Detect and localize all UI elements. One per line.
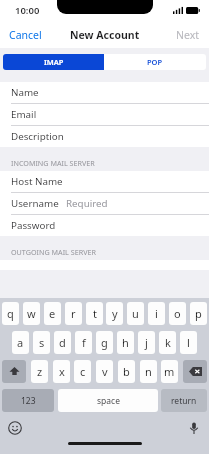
button[interactable]: n bbox=[140, 360, 157, 383]
staticText: INCOMING MAIL SERVER bbox=[11, 158, 95, 168]
staticText: k bbox=[165, 335, 171, 350]
staticText: h bbox=[122, 335, 129, 350]
staticText: x bbox=[59, 364, 65, 379]
staticText: m bbox=[164, 364, 175, 379]
button[interactable]: POP bbox=[104, 54, 206, 70]
button[interactable]: c bbox=[74, 360, 91, 383]
staticText: j bbox=[145, 335, 148, 350]
staticText: i bbox=[155, 306, 158, 321]
staticText: b bbox=[123, 364, 130, 379]
staticText: c bbox=[80, 364, 86, 379]
staticText: n bbox=[145, 364, 152, 379]
staticText: Next bbox=[176, 28, 200, 42]
button[interactable]: Username bbox=[0, 193, 209, 215]
staticText: p bbox=[195, 306, 202, 321]
button[interactable]: Name bbox=[0, 82, 209, 104]
staticText: r bbox=[71, 306, 76, 321]
staticText: Cancel bbox=[9, 28, 42, 42]
button[interactable]: IMAP bbox=[3, 54, 104, 70]
staticText: z bbox=[37, 364, 43, 379]
button[interactable]: b bbox=[118, 360, 135, 383]
staticText: Host Name bbox=[11, 175, 63, 188]
button[interactable]: z bbox=[31, 360, 48, 383]
button[interactable]: t bbox=[86, 302, 103, 325]
button[interactable]: o bbox=[169, 302, 186, 325]
button[interactable]: return bbox=[161, 389, 207, 412]
staticText: IMAP bbox=[44, 57, 64, 67]
staticText: Description bbox=[11, 130, 64, 143]
button[interactable]: w bbox=[23, 302, 40, 325]
button[interactable]: Backspace bbox=[183, 360, 207, 383]
staticText: Username bbox=[11, 197, 59, 210]
button[interactable]: Cancel bbox=[0, 24, 51, 46]
button[interactable]: k bbox=[159, 331, 176, 354]
button[interactable]: y bbox=[106, 302, 123, 325]
staticText: q bbox=[7, 306, 14, 321]
button[interactable]: q bbox=[2, 302, 19, 325]
button[interactable]: Email bbox=[0, 104, 209, 126]
button[interactable]: j bbox=[138, 331, 155, 354]
staticText: New Account bbox=[70, 28, 140, 42]
staticText: Required bbox=[66, 197, 108, 210]
button[interactable]: a bbox=[12, 331, 29, 354]
staticText: return bbox=[171, 395, 197, 407]
button[interactable]: Next bbox=[167, 24, 209, 46]
staticText: space bbox=[97, 395, 120, 407]
staticText: Password bbox=[11, 219, 56, 232]
staticText: 123 bbox=[21, 395, 36, 407]
button[interactable]: Host Name bbox=[0, 171, 209, 193]
button[interactable]: l bbox=[180, 331, 197, 354]
staticText: s bbox=[39, 335, 45, 350]
button[interactable]: f bbox=[75, 331, 92, 354]
staticText: Name bbox=[11, 86, 39, 99]
button[interactable]: s bbox=[33, 331, 50, 354]
staticText: a bbox=[17, 335, 24, 350]
staticText: o bbox=[174, 306, 181, 321]
staticText: w bbox=[27, 306, 36, 321]
staticText: l bbox=[187, 335, 190, 350]
button[interactable]: r bbox=[65, 302, 82, 325]
button[interactable]: e bbox=[44, 302, 61, 325]
staticText: y bbox=[112, 306, 118, 321]
staticText: d bbox=[59, 335, 66, 350]
button[interactable]: x bbox=[53, 360, 70, 383]
staticText: g bbox=[101, 335, 108, 350]
button[interactable]: m bbox=[161, 360, 178, 383]
button[interactable]: h bbox=[117, 331, 134, 354]
staticText: t bbox=[93, 306, 97, 321]
staticText: 10:00 bbox=[15, 4, 40, 17]
staticText: f bbox=[82, 335, 86, 350]
staticText: u bbox=[132, 306, 139, 321]
button[interactable]: d bbox=[54, 331, 71, 354]
button[interactable]: space bbox=[58, 389, 158, 412]
button[interactable]: 123 bbox=[2, 389, 54, 412]
button[interactable]: Emoji keyboard bbox=[8, 421, 22, 435]
staticText: v bbox=[102, 364, 108, 379]
staticText: e bbox=[49, 306, 56, 321]
staticText: POP bbox=[147, 57, 163, 67]
button[interactable]: Shift bbox=[2, 360, 26, 383]
button[interactable]: Dictation bbox=[187, 421, 201, 435]
button[interactable]: Description bbox=[0, 126, 209, 147]
button[interactable]: Password bbox=[0, 215, 209, 236]
button[interactable]: p bbox=[190, 302, 207, 325]
button[interactable]: u bbox=[127, 302, 144, 325]
button[interactable]: v bbox=[96, 360, 113, 383]
button[interactable]: g bbox=[96, 331, 113, 354]
button[interactable]: i bbox=[148, 302, 165, 325]
staticText: Email bbox=[11, 108, 37, 121]
staticText: OUTGOING MAIL SERVER bbox=[11, 247, 96, 257]
